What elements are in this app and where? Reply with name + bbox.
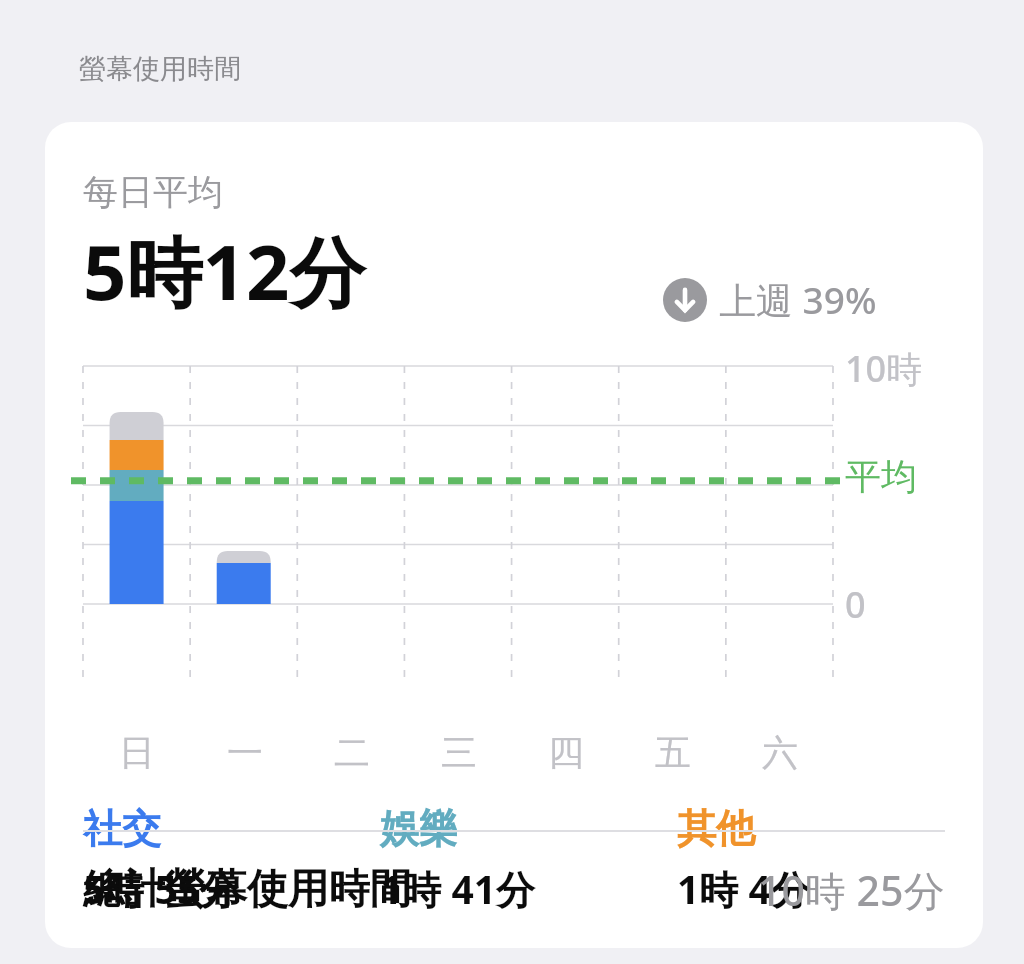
staticText: 其他 — [677, 804, 755, 853]
other: 較上週下降 — [663, 278, 707, 322]
button[interactable]: 較上週下降 — [663, 274, 877, 325]
staticText: 日 — [119, 730, 155, 775]
staticText: 平均 — [845, 454, 917, 499]
button[interactable]: 每日平均 — [45, 122, 983, 948]
button[interactable]: 總計螢幕使用時間 — [45, 832, 983, 948]
staticText: 10時 — [845, 344, 923, 393]
staticText: 社交 — [83, 804, 161, 853]
button[interactable]: 其他 — [677, 804, 945, 915]
staticText: 螢幕使用時間 — [79, 52, 241, 86]
staticText: 1時 4分 — [677, 862, 810, 915]
staticText: 二 — [334, 730, 370, 775]
staticText: 5時12分 — [83, 219, 366, 323]
staticText: 0 — [845, 580, 866, 629]
staticText: 六 — [762, 730, 798, 775]
staticText: 五 — [655, 730, 691, 775]
staticText: 5時 55分 — [83, 862, 239, 915]
button[interactable]: 娛樂 — [380, 804, 677, 915]
staticText: 四 — [548, 730, 584, 775]
staticText: 上週 39% — [719, 274, 877, 325]
button[interactable]: 社交 — [83, 804, 380, 915]
staticText: 每日平均 — [83, 170, 223, 214]
staticText: 娛樂 — [380, 804, 458, 853]
staticText: 一 — [227, 730, 263, 775]
staticText: 1時 41分 — [380, 862, 536, 915]
staticText: 三 — [441, 730, 477, 775]
staticText: 10時 25分 — [758, 862, 945, 918]
staticText: 總計螢幕使用時間 — [83, 864, 411, 916]
